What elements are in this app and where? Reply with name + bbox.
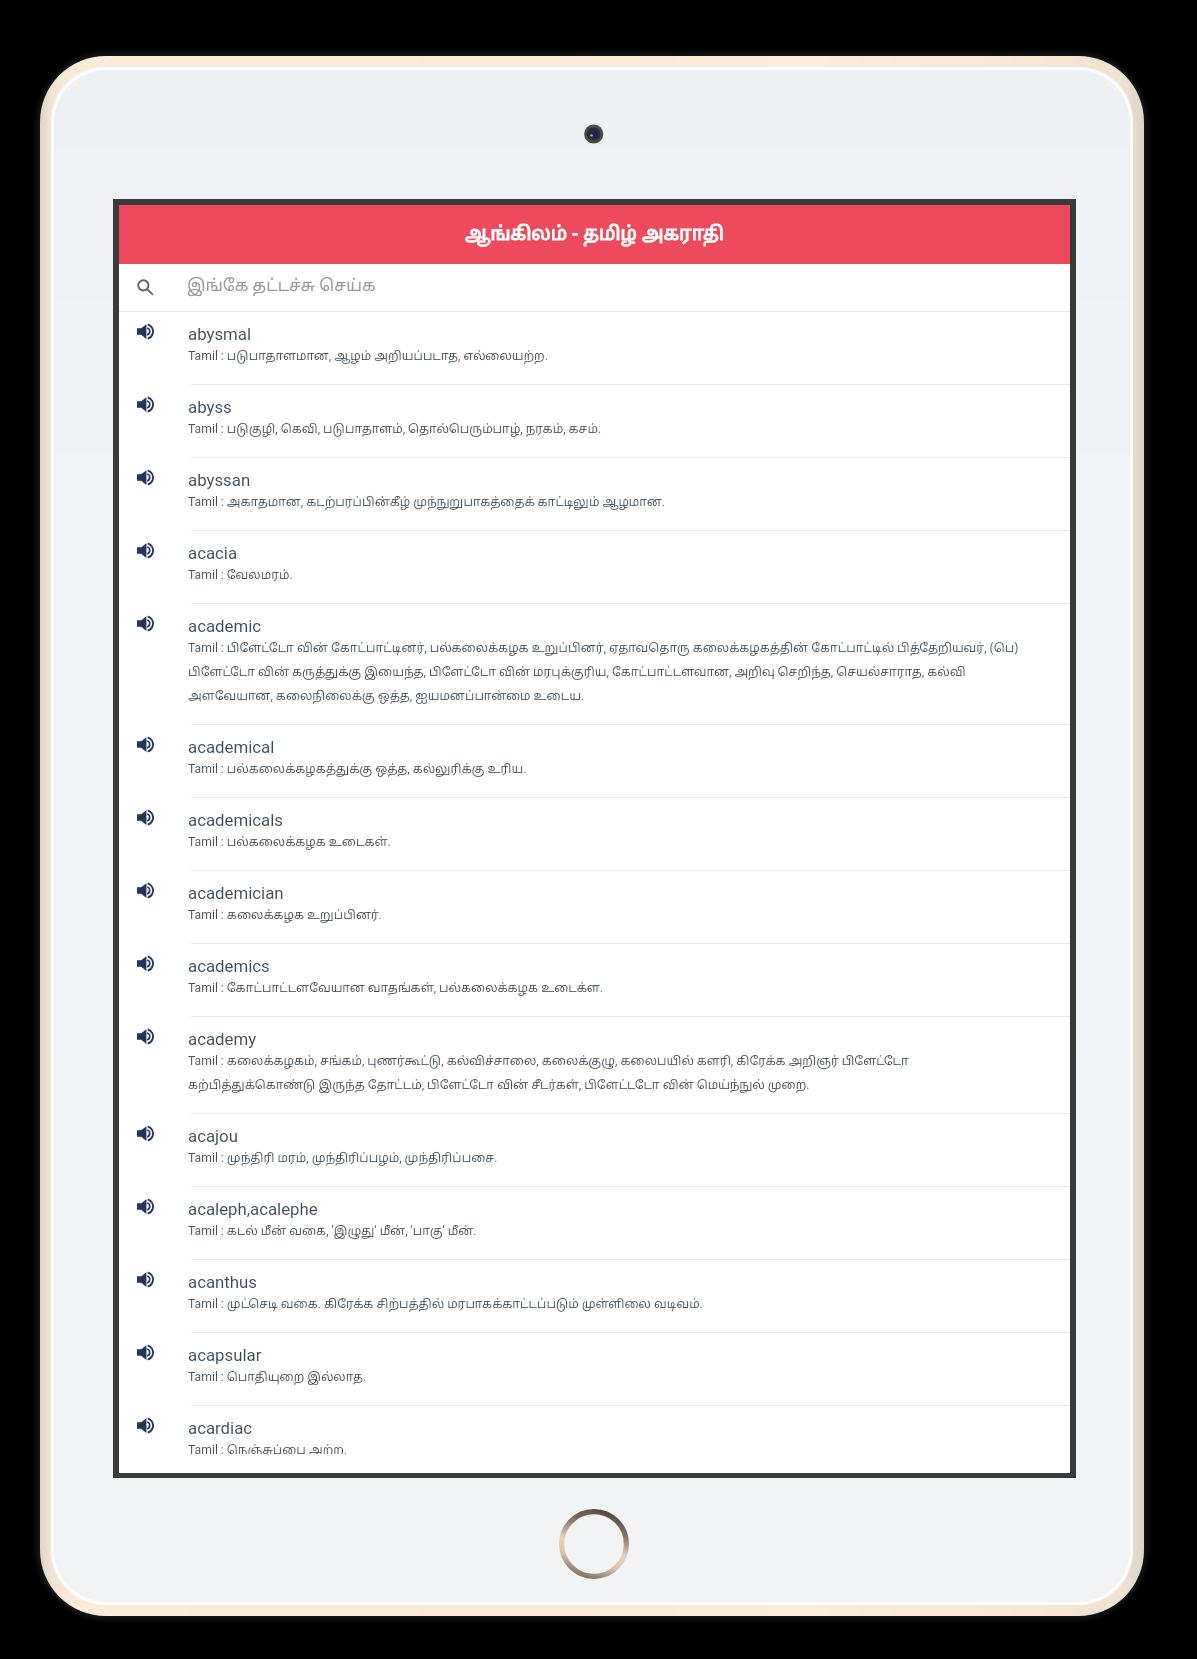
- other: Pronounce academicals: [137, 809, 154, 826]
- staticText: Tamil : பொதியுறை இல்லாத.: [188, 1370, 367, 1386]
- staticText: academics: [188, 956, 270, 976]
- other: Pronounce abyss: [137, 396, 154, 413]
- staticText: academy: [188, 1029, 257, 1049]
- staticText: academic: [188, 616, 262, 636]
- staticText: Tamil : படுகுழி, கெவி, படுபாதாளம், தொல்ப…: [188, 422, 602, 438]
- staticText: acanthus: [188, 1272, 258, 1292]
- staticText: Tamil : நெஞ்சுப்பை அற்ற.: [188, 1443, 347, 1454]
- staticText: Tamil : அகாதமான, கடற்பரப்பின்கீழ் முந்நு…: [188, 495, 665, 511]
- staticText: acaleph,acalephe: [188, 1199, 318, 1219]
- button[interactable]: Pronounce abyss: [119, 385, 1070, 457]
- other: Search: [137, 279, 153, 295]
- staticText: Tamil : படுபாதாளமான, ஆழம் அறியப்படாத, எல…: [188, 349, 548, 365]
- other: Pronounce academics: [137, 955, 154, 972]
- staticText: acapsular: [188, 1345, 262, 1365]
- staticText: Tamil : முட்செடி வகை. கிரேக்க சிற்பத்தில…: [188, 1297, 703, 1313]
- staticText: Tamil : கோட்பாட்டளவேயான வாதங்கள், பல்கலை…: [188, 981, 604, 997]
- staticText: Tamil : கலைக்கழக உறுப்பினர்.: [188, 908, 383, 924]
- staticText: acajou: [188, 1126, 238, 1146]
- other: Pronounce acacia: [137, 542, 154, 559]
- staticText: Tamil : பிளேட்டோ வின் கோட்பாட்டினர், பல்…: [188, 641, 1028, 705]
- other: Pronounce acanthus: [137, 1271, 154, 1288]
- other: Pronounce academician: [137, 882, 154, 899]
- button[interactable]: Pronounce acardiac: [119, 1406, 1070, 1473]
- other: Pronounce acajou: [137, 1125, 154, 1142]
- staticText: acacia: [188, 543, 238, 563]
- button[interactable]: Pronounce abysmal: [119, 312, 1070, 384]
- staticText: ஆங்கிலம் - தமிழ் அகராதி: [465, 223, 724, 247]
- staticText: Tamil : கலைக்கழகம், சங்கம், புணர்கூட்டு,…: [188, 1054, 1028, 1094]
- staticText: abyss: [188, 397, 232, 417]
- button[interactable]: Pronounce academics: [119, 944, 1070, 1016]
- other: Pronounce acardiac: [137, 1417, 154, 1434]
- button[interactable]: Pronounce abyssan: [119, 458, 1070, 530]
- button[interactable]: Pronounce academy: [119, 1017, 1070, 1113]
- button[interactable]: Home: [559, 1509, 629, 1579]
- staticText: abyssan: [188, 470, 251, 490]
- other: Pronounce abyssan: [137, 469, 154, 486]
- button[interactable]: Pronounce academicals: [119, 798, 1070, 870]
- button[interactable]: Pronounce acanthus: [119, 1260, 1070, 1332]
- staticText: Tamil : வேலமரம்.: [188, 568, 293, 584]
- other: Pronounce academic: [137, 615, 154, 632]
- button[interactable]: ஆங்கிலம் - தமிழ் அகராதி: [119, 205, 1070, 264]
- other: Pronounce academical: [137, 736, 154, 753]
- staticText: academician: [188, 883, 284, 903]
- staticText: academical: [188, 737, 275, 757]
- button[interactable]: Pronounce acacia: [119, 531, 1070, 603]
- staticText: acardiac: [188, 1418, 253, 1438]
- button[interactable]: Pronounce academical: [119, 725, 1070, 797]
- other: Pronounce acapsular: [137, 1344, 154, 1361]
- staticText: abysmal: [188, 324, 252, 344]
- button[interactable]: Pronounce academic: [119, 604, 1070, 724]
- other: Pronounce academy: [137, 1028, 154, 1045]
- staticText: Tamil : முந்திரி மரம், முந்திரிப்பழம், ம…: [188, 1151, 498, 1167]
- staticText: இங்கே தட்டச்சு செய்க: [187, 277, 376, 297]
- staticText: Tamil : கடல் மீன் வகை, 'இழுது' மீன், 'பா…: [188, 1224, 477, 1240]
- button[interactable]: Pronounce acajou: [119, 1114, 1070, 1186]
- button[interactable]: Pronounce acapsular: [119, 1333, 1070, 1405]
- other: Pronounce acaleph,acalephe: [137, 1198, 154, 1215]
- staticText: Tamil : பல்கலைக்கழகத்துக்கு ஒத்த, கல்லுர…: [188, 762, 527, 778]
- button[interactable]: Pronounce acaleph,acalephe: [119, 1187, 1070, 1259]
- button[interactable]: Pronounce academician: [119, 871, 1070, 943]
- staticText: academicals: [188, 810, 283, 830]
- other: Pronounce abysmal: [137, 323, 154, 340]
- staticText: Tamil : பல்கலைக்கழக உடைகள்.: [188, 835, 391, 851]
- button[interactable]: Search: [119, 264, 1070, 311]
